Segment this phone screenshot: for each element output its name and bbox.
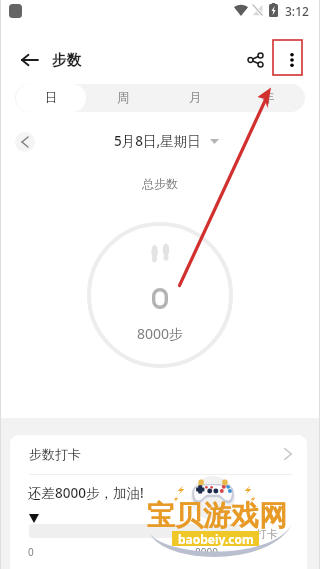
staticText: 宝贝游戏网 bbox=[147, 498, 287, 533]
button[interactable]: 日 bbox=[16, 84, 86, 112]
staticText: 月 bbox=[189, 90, 202, 106]
button[interactable]: 打卡 bbox=[256, 527, 278, 541]
staticText: 8000 bbox=[195, 545, 218, 559]
staticText: 8000步 bbox=[137, 324, 184, 343]
button[interactable]: 周 bbox=[88, 84, 158, 112]
staticText: 还差8000步，加油! bbox=[28, 484, 144, 502]
staticText: 周 bbox=[117, 90, 130, 106]
staticText: 日 bbox=[45, 90, 58, 106]
staticText: 3:12 bbox=[285, 3, 309, 19]
button[interactable]: Previous day bbox=[15, 132, 35, 152]
button[interactable]: 月 bbox=[160, 84, 231, 112]
button[interactable]: Back bbox=[13, 44, 45, 76]
staticText: baobeiy.com bbox=[178, 531, 254, 546]
button[interactable]: More options bbox=[276, 44, 308, 76]
button[interactable]: 5月8日,星期日 bbox=[114, 132, 219, 150]
staticText: 步数 bbox=[52, 51, 81, 69]
staticText: 总步数 bbox=[142, 176, 178, 191]
button[interactable]: Share bbox=[239, 44, 271, 76]
staticText: 0 bbox=[28, 545, 34, 559]
staticText: 步数打卡 bbox=[29, 446, 81, 462]
button[interactable]: 年 bbox=[233, 84, 304, 112]
button[interactable]: 步数打卡 bbox=[10, 435, 307, 473]
staticText: 年 bbox=[262, 90, 275, 106]
staticText: 5月8日,星期日 bbox=[114, 132, 201, 150]
